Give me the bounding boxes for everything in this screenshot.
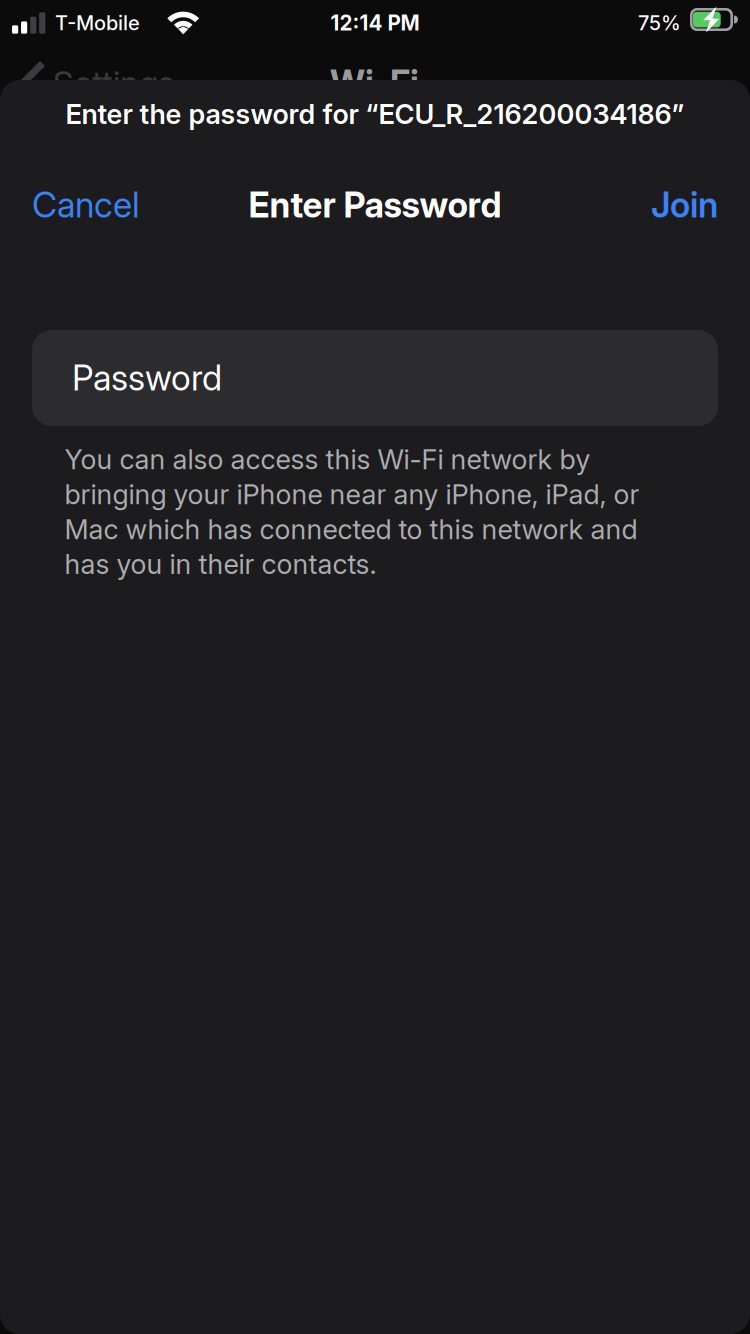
button[interactable]: Cancel bbox=[0, 175, 158, 235]
button[interactable]: Password bbox=[32, 330, 718, 426]
staticText: 12:14 PM bbox=[330, 10, 419, 35]
staticText: Password bbox=[72, 357, 222, 399]
staticText: Enter Password bbox=[248, 184, 501, 226]
staticText: Settings bbox=[53, 63, 175, 103]
staticText: Enter the password for “ECU_R_2162000341… bbox=[65, 97, 684, 131]
staticText: T-Mobile bbox=[55, 11, 140, 35]
staticText: 75% bbox=[638, 11, 681, 35]
staticText: Cancel bbox=[32, 184, 140, 226]
staticText: Join bbox=[651, 184, 718, 226]
button[interactable]: Join bbox=[633, 175, 750, 235]
staticText: You can also access this Wi-Fi network b… bbox=[64, 443, 639, 581]
staticText: Wi-Fi bbox=[330, 62, 419, 104]
